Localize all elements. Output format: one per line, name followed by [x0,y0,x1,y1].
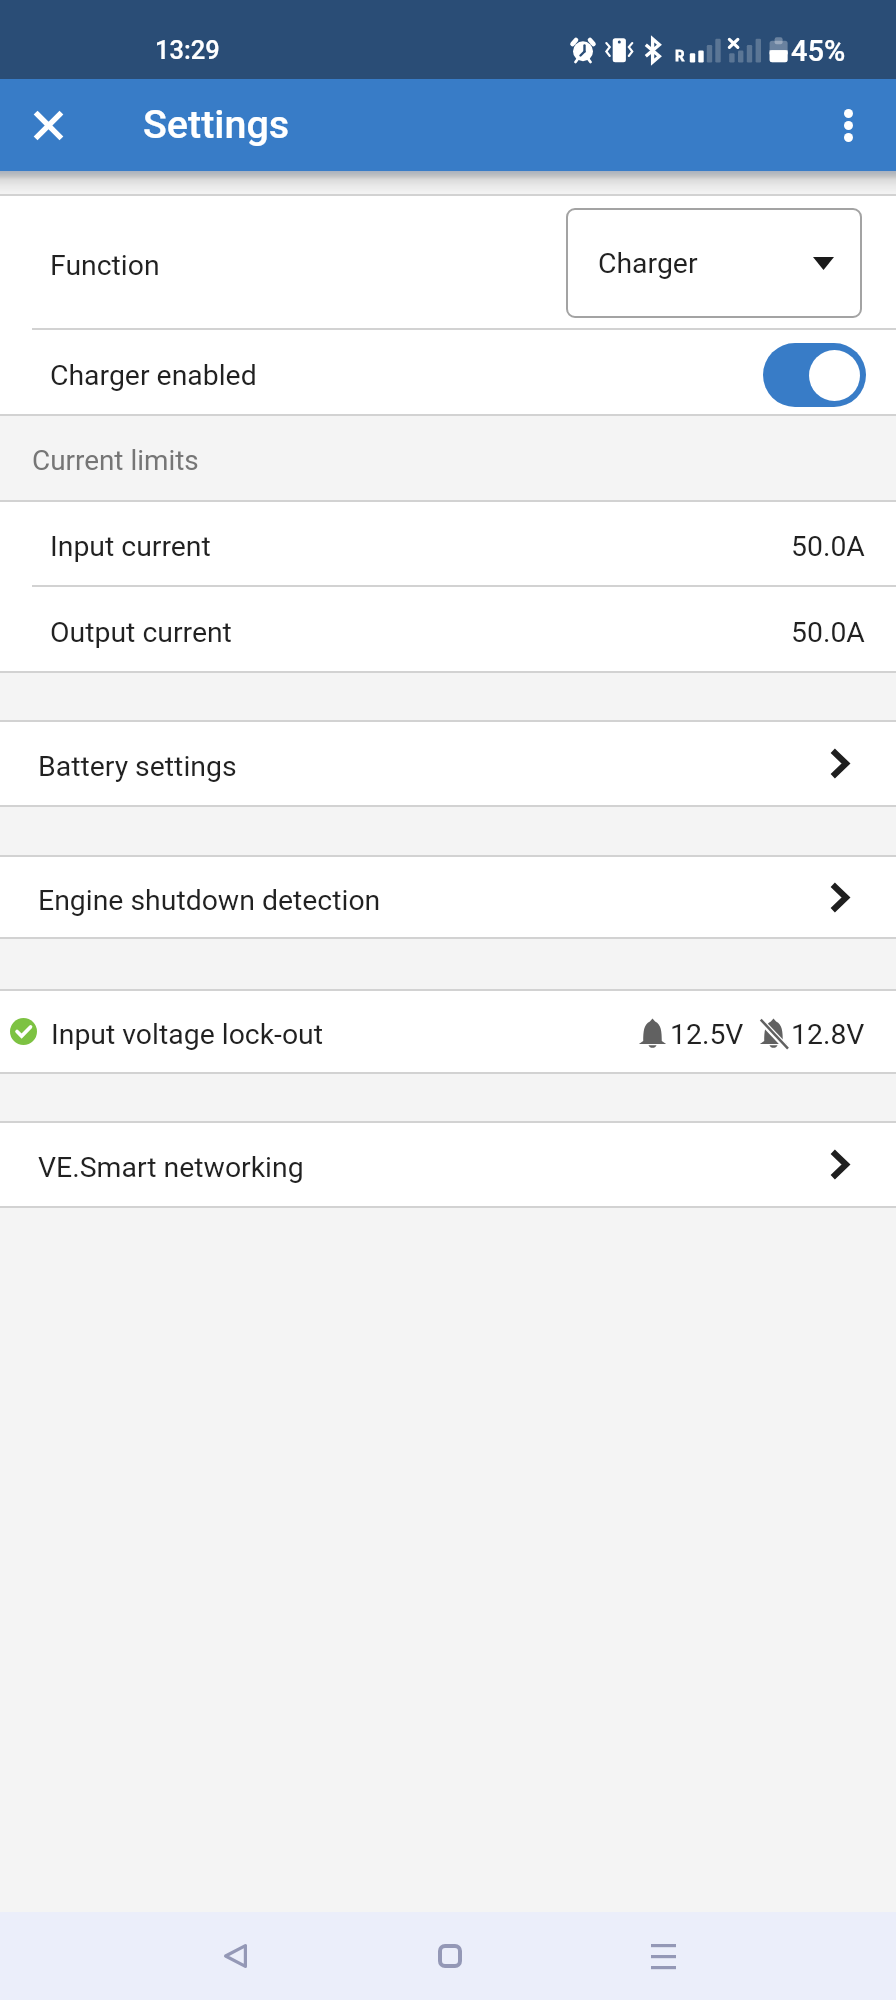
button[interactable]: Input current [0,502,896,585]
staticText: Settings [143,101,290,147]
staticText: VE.Smart networking [38,1151,304,1184]
button[interactable]: Recents [603,1912,723,2000]
button[interactable]: Back [175,1912,295,2000]
staticText: 45% [791,34,846,68]
button[interactable]: Output current [0,587,896,671]
staticText: R [675,47,685,65]
button[interactable]: Input voltage lock-out [0,991,896,1072]
staticText: 13:29 [155,35,220,65]
button[interactable]: Home [390,1912,510,2000]
staticText: 50.0A [791,530,865,563]
staticText: Output current [50,616,232,649]
button[interactable]: Charger enabled [0,330,896,414]
button[interactable]: Engine shutdown detection [0,857,896,937]
staticText: Input current [50,530,211,563]
staticText: Battery settings [38,750,237,783]
button[interactable]: More options [814,91,882,159]
button[interactable]: Close [14,91,82,159]
staticText: 50.0A [791,616,865,649]
button[interactable]: Battery settings [0,722,896,805]
staticText: 12.5V [670,1018,744,1051]
staticText: Current limits [32,444,199,477]
staticText: Engine shutdown detection [38,884,381,917]
button[interactable]: Function [0,196,896,328]
staticText: Function [50,249,160,282]
staticText: 12.8V [791,1018,865,1051]
staticText: Charger [598,247,698,280]
staticText: Input voltage lock-out [51,1018,324,1051]
button[interactable]: VE.Smart networking [0,1123,896,1206]
staticText: Charger enabled [50,359,257,392]
